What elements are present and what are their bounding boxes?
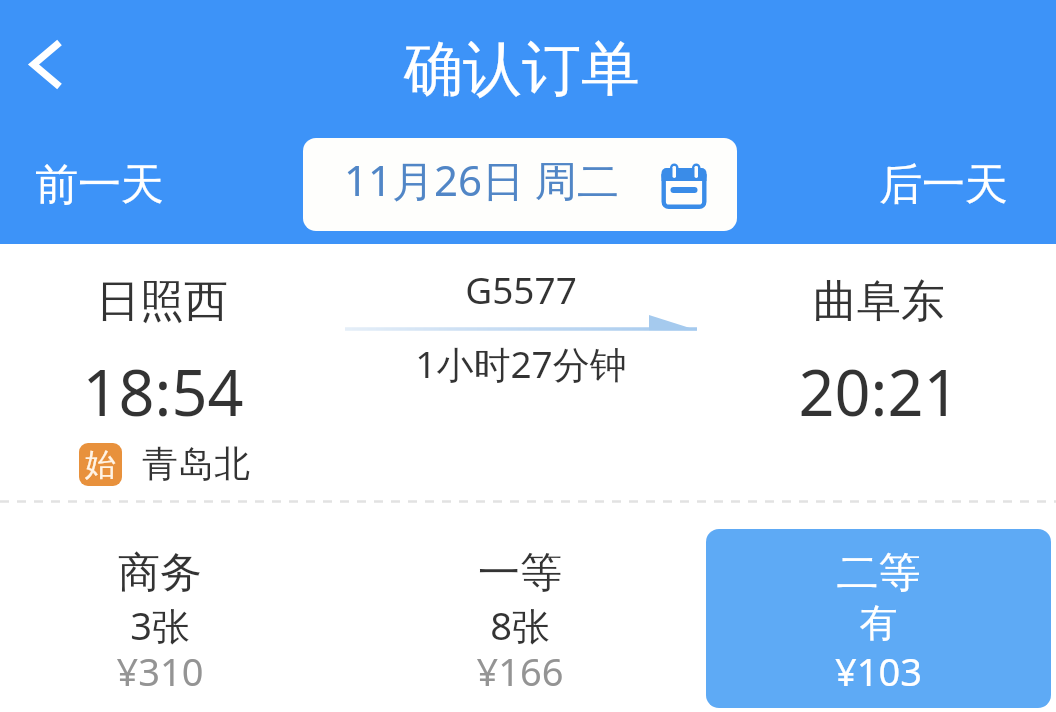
button[interactable]: 二等	[706, 529, 1051, 708]
staticText: 后一天	[879, 158, 1008, 212]
button[interactable]: 始	[79, 442, 250, 487]
button[interactable]: 后一天	[866, 148, 995, 202]
staticText: 商务	[40, 547, 280, 600]
staticText: 一等	[400, 547, 640, 600]
staticText: 始	[85, 445, 116, 484]
button[interactable]: 11月26日 周二	[303, 138, 737, 231]
button[interactable]: 商务	[40, 529, 280, 708]
staticText: 二等	[706, 547, 1051, 600]
staticText: 1小时27分钟	[331, 338, 711, 389]
button[interactable]: 一等	[400, 529, 640, 708]
button[interactable]: Back	[8, 20, 92, 104]
staticText: 8张	[400, 599, 640, 651]
button[interactable]: 前一天	[20, 148, 149, 202]
staticText: 日照西	[52, 274, 272, 329]
staticText: G5577	[331, 264, 711, 314]
staticText: 前一天	[35, 158, 164, 212]
staticText: ¥310	[40, 645, 280, 697]
staticText: 确认订单	[0, 32, 1050, 106]
staticText: ¥103	[706, 645, 1051, 697]
staticText: 20:21	[769, 349, 989, 435]
staticText: 青岛北	[142, 441, 250, 486]
staticText: 18:54	[53, 349, 273, 435]
staticText: 11月26日 周二	[344, 151, 620, 208]
staticText: ¥166	[400, 645, 640, 697]
staticText: 3张	[40, 599, 280, 651]
staticText: 有	[706, 599, 1051, 647]
staticText: 曲阜东	[769, 274, 989, 329]
